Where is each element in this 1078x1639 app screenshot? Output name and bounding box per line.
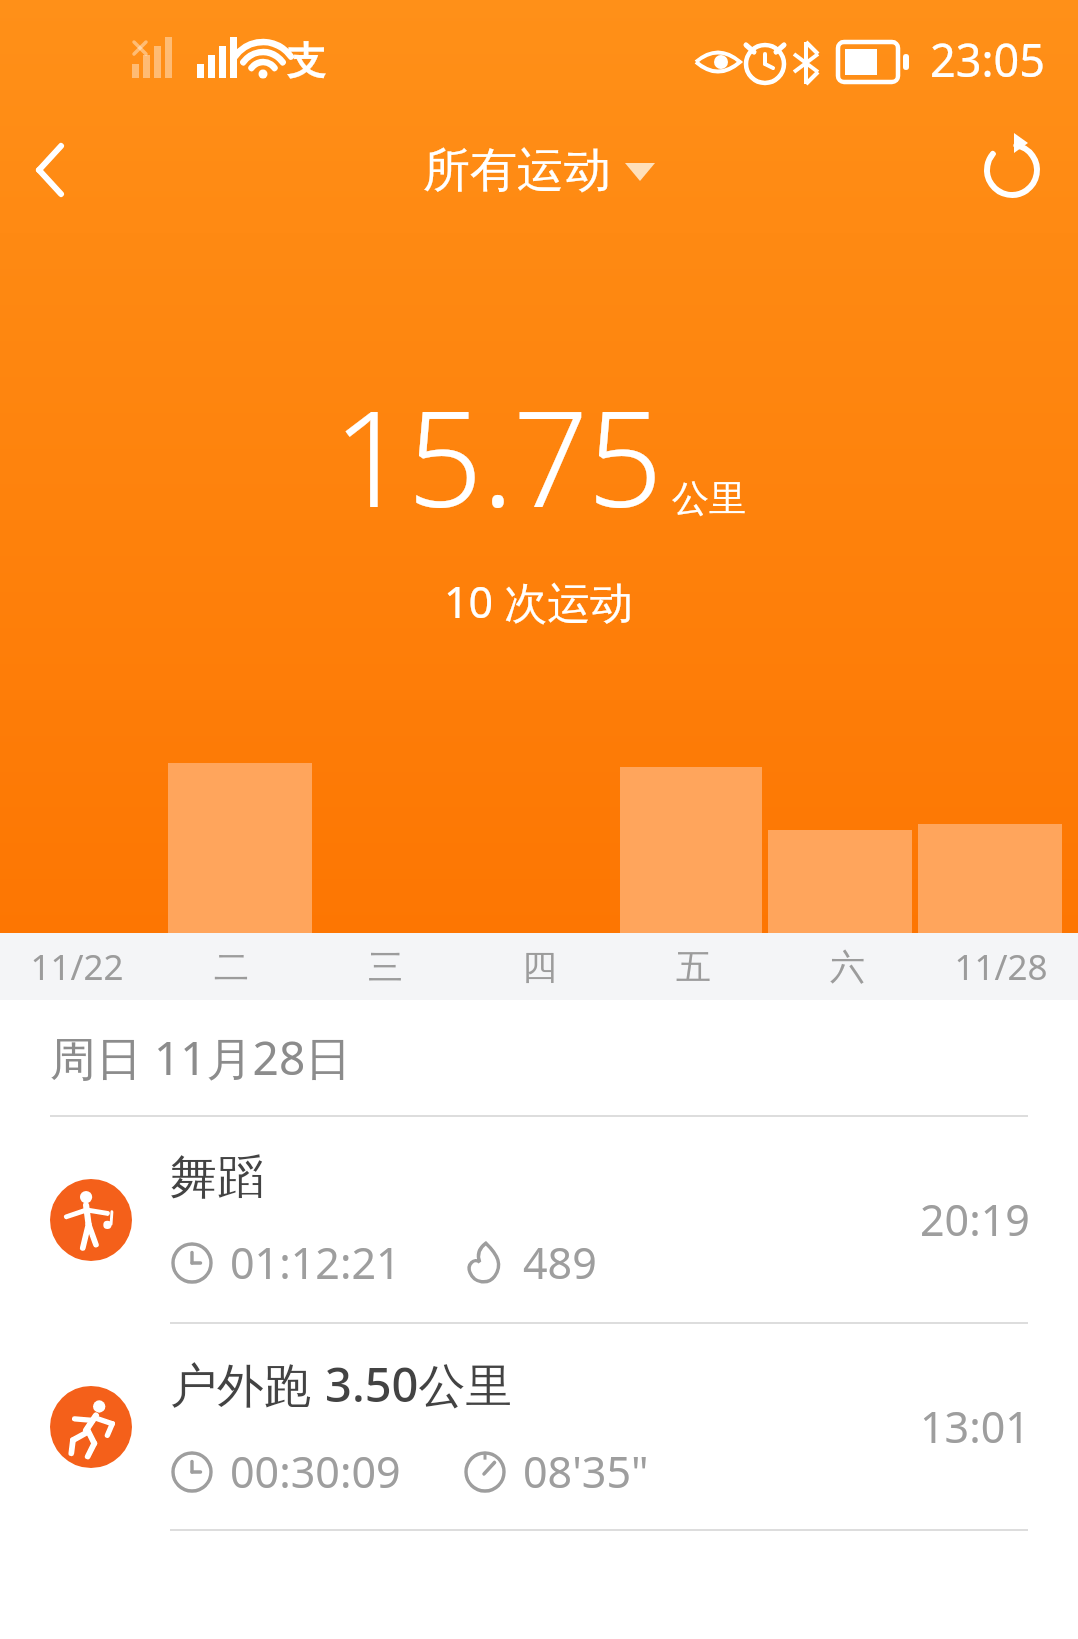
button[interactable]: 四 xyxy=(462,933,616,1000)
button[interactable]: 舞蹈 xyxy=(0,1117,1078,1322)
staticText: 23:05 xyxy=(930,29,1046,90)
staticText: 三 xyxy=(368,945,403,989)
button[interactable]: 五 xyxy=(616,933,770,1000)
staticText: 舞蹈 xyxy=(170,1148,264,1207)
staticText: 08'35" xyxy=(523,1442,649,1501)
staticText: 六 xyxy=(830,945,865,989)
staticText: 周日 11月28日 xyxy=(50,1026,352,1089)
button[interactable]: 二 xyxy=(154,933,308,1000)
button[interactable]: 三 xyxy=(308,933,462,1000)
button[interactable]: Back xyxy=(0,120,100,220)
button[interactable]: 户外跑 xyxy=(0,1324,1078,1529)
staticText: 户外跑 xyxy=(170,1357,311,1416)
staticText: 20:19 xyxy=(920,1190,1030,1249)
staticText: 10 次运动 xyxy=(444,572,634,631)
staticText: 支 xyxy=(287,37,325,85)
staticText: 五 xyxy=(676,945,711,989)
staticText: 四 xyxy=(522,945,557,989)
staticText: 00:30:09 xyxy=(230,1442,401,1501)
staticText: 3.50公里 xyxy=(325,1352,513,1416)
button[interactable]: 六 xyxy=(770,933,924,1000)
staticText: 01:12:21 xyxy=(230,1233,401,1292)
button[interactable]: Sync xyxy=(966,124,1058,216)
staticText: 489 xyxy=(523,1233,597,1292)
button[interactable]: 所有运动 xyxy=(423,141,655,200)
button[interactable]: 11/22 xyxy=(0,933,154,1000)
staticText: 公里 xyxy=(672,475,746,522)
staticText: 11/28 xyxy=(954,943,1048,991)
staticText: 所有运动 xyxy=(423,141,611,200)
staticText: 二 xyxy=(214,945,249,989)
staticText: 13:01 xyxy=(920,1397,1030,1456)
staticText: 15.75 xyxy=(333,366,662,546)
button[interactable]: 11/28 xyxy=(924,933,1078,1000)
staticText: 11/22 xyxy=(30,943,124,991)
